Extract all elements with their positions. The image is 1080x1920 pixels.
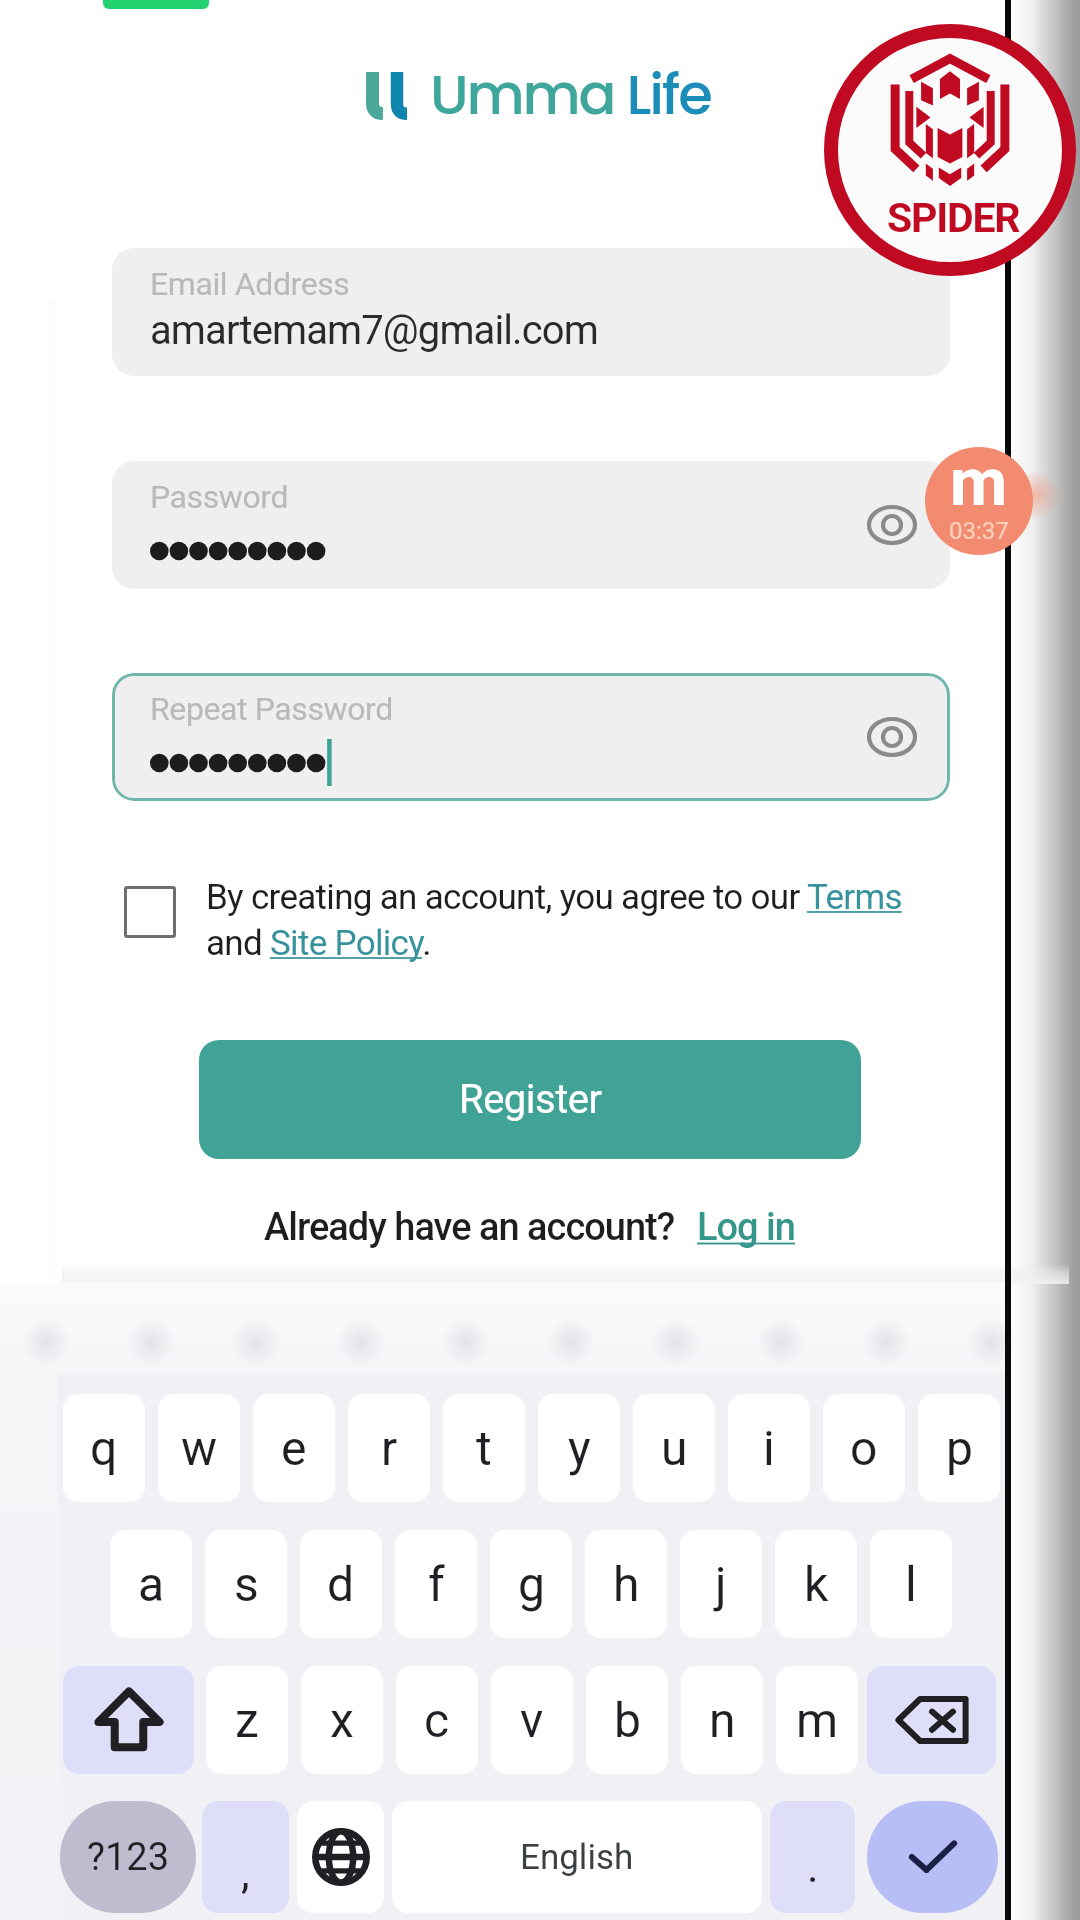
button[interactable]: f [395, 1530, 477, 1638]
staticText: . [807, 1841, 819, 1893]
button[interactable]: s [205, 1530, 287, 1638]
staticText: d [327, 1556, 355, 1612]
button[interactable]: m [776, 1666, 858, 1774]
staticText: c [424, 1692, 450, 1748]
staticText: Umma Life [430, 55, 711, 133]
button[interactable]: Show password [854, 699, 930, 775]
button[interactable]: i [728, 1394, 810, 1502]
staticText: r [381, 1420, 398, 1476]
staticText: Register [459, 1076, 602, 1123]
staticText: Email Address [150, 265, 350, 303]
button[interactable]: o [823, 1394, 905, 1502]
button[interactable]: English [392, 1801, 762, 1913]
button[interactable]: Show password [854, 487, 930, 563]
button[interactable]: Email Address [112, 248, 950, 376]
button[interactable]: Enter [867, 1801, 998, 1913]
button[interactable]: b [586, 1666, 668, 1774]
button[interactable]: k [775, 1530, 857, 1638]
button[interactable]: Agree to terms and site policy [124, 886, 176, 938]
button[interactable]: e [253, 1394, 335, 1502]
button[interactable]: Backspace [867, 1666, 996, 1774]
staticText: b [614, 1692, 641, 1748]
staticText: z [235, 1692, 259, 1748]
button[interactable]: l [870, 1530, 952, 1638]
staticText: n [709, 1692, 736, 1748]
button[interactable]: Register [199, 1040, 861, 1159]
staticText: Already have an account? [264, 1205, 675, 1250]
staticText: SPIDER [887, 194, 1020, 242]
staticText: x [330, 1692, 354, 1748]
button[interactable]: j [680, 1530, 762, 1638]
staticText: t [476, 1420, 492, 1476]
button[interactable]: Repeat Password [112, 673, 950, 801]
staticText: Log in [697, 1205, 795, 1250]
button[interactable]: y [538, 1394, 620, 1502]
button[interactable]: h [585, 1530, 667, 1638]
button[interactable]: ?123 [60, 1801, 196, 1913]
button[interactable]: r [348, 1394, 430, 1502]
staticText: a [138, 1556, 165, 1612]
staticText: v [520, 1692, 544, 1748]
staticText: 03:37 [949, 517, 1009, 545]
button[interactable]: w [158, 1394, 240, 1502]
button[interactable]: Period [770, 1801, 855, 1913]
button[interactable]: c [396, 1666, 478, 1774]
staticText: s [234, 1556, 259, 1612]
staticText: q [90, 1420, 118, 1476]
button[interactable]: u [633, 1394, 715, 1502]
staticText: m [950, 447, 1008, 521]
button[interactable]: z [206, 1666, 288, 1774]
button[interactable]: a [110, 1530, 192, 1638]
button[interactable]: n [681, 1666, 763, 1774]
staticText: y [568, 1420, 591, 1476]
button[interactable]: p [918, 1394, 1000, 1502]
button[interactable]: q [63, 1394, 145, 1502]
staticText: g [518, 1556, 545, 1612]
button[interactable]: Shift [63, 1666, 194, 1774]
staticText: , [241, 1847, 250, 1899]
staticText: ?123 [87, 1835, 170, 1880]
button[interactable]: Password [112, 461, 950, 589]
button[interactable]: v [491, 1666, 573, 1774]
staticText: i [763, 1420, 775, 1476]
button[interactable]: x [301, 1666, 383, 1774]
staticText: e [281, 1420, 307, 1476]
staticText: m [796, 1692, 839, 1748]
staticText: amartemam7@gmail.com [150, 307, 598, 354]
staticText: f [428, 1556, 445, 1612]
button[interactable]: Change keyboard language [297, 1801, 384, 1913]
staticText: o [850, 1420, 878, 1476]
staticText: l [905, 1556, 917, 1612]
button[interactable]: Log in [697, 1205, 795, 1250]
staticText: p [946, 1420, 973, 1476]
button[interactable]: Comma [202, 1801, 289, 1913]
staticText: u [661, 1420, 688, 1476]
staticText: By creating an account, you agree to our… [206, 877, 919, 964]
staticText: k [804, 1556, 829, 1612]
button[interactable]: g [490, 1530, 572, 1638]
staticText: Repeat Password [150, 690, 393, 728]
button[interactable]: d [300, 1530, 382, 1638]
button[interactable]: t [443, 1394, 525, 1502]
staticText: h [613, 1556, 640, 1612]
staticText: Password [150, 478, 289, 516]
staticText: English [520, 1837, 634, 1878]
staticText: w [181, 1420, 218, 1476]
staticText: j [715, 1556, 727, 1612]
